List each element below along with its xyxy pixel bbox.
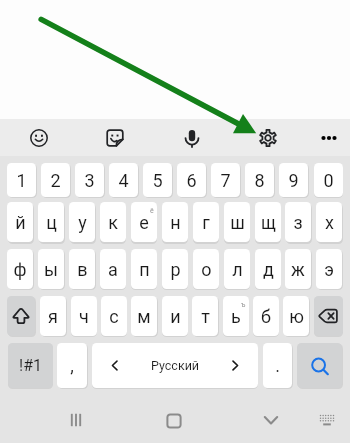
button[interactable]: Recent apps	[62, 406, 90, 434]
staticText: й	[15, 212, 26, 233]
button[interactable]: т	[192, 296, 218, 336]
staticText: н	[170, 212, 181, 233]
button[interactable]: е	[131, 202, 157, 242]
staticText: л	[232, 259, 243, 280]
button[interactable]: Settings	[250, 120, 286, 156]
staticText: я	[48, 306, 58, 327]
button[interactable]: д	[255, 249, 281, 289]
button[interactable]: х	[316, 202, 342, 242]
button[interactable]: й	[7, 202, 33, 242]
button[interactable]: я	[40, 296, 66, 336]
staticText: п	[139, 259, 150, 280]
button[interactable]: Shift	[7, 296, 35, 336]
staticText: з	[293, 212, 303, 233]
button[interactable]: 6	[177, 163, 206, 197]
staticText: ъ	[241, 301, 246, 309]
button[interactable]: 1	[7, 163, 36, 197]
staticText: ш	[230, 212, 245, 233]
button[interactable]: п	[131, 249, 157, 289]
staticText: ы	[44, 259, 58, 280]
staticText: у	[78, 212, 87, 233]
staticText: г	[202, 212, 210, 233]
button[interactable]: Voice input	[174, 120, 210, 156]
staticText: .	[275, 355, 280, 376]
staticText: 8	[254, 170, 265, 191]
staticText: 3	[84, 170, 95, 191]
button[interactable]: ы	[38, 249, 64, 289]
button[interactable]: ь	[223, 296, 249, 336]
staticText: х	[325, 212, 334, 233]
button[interactable]: ю	[283, 296, 309, 336]
staticText: 0	[323, 170, 334, 191]
staticText: 4	[118, 170, 129, 191]
button[interactable]: з	[285, 202, 311, 242]
staticText: 9	[288, 170, 299, 191]
button[interactable]: Stickers	[97, 120, 133, 156]
staticText: ц	[46, 212, 57, 233]
button[interactable]: в	[69, 249, 95, 289]
button[interactable]: ц	[38, 202, 64, 242]
staticText: Русский	[151, 358, 200, 373]
button[interactable]: к	[100, 202, 126, 242]
staticText: 1	[16, 170, 27, 191]
button[interactable]: б	[253, 296, 279, 336]
button[interactable]: 4	[109, 163, 138, 197]
button[interactable]: у	[69, 202, 95, 242]
button[interactable]: ж	[285, 249, 311, 289]
staticText: 6	[186, 170, 197, 191]
staticText: в	[77, 259, 88, 280]
staticText: ю	[289, 306, 304, 327]
button[interactable]: и	[162, 296, 188, 336]
button[interactable]: .	[263, 343, 292, 388]
button[interactable]: о	[193, 249, 219, 289]
button[interactable]: More options	[311, 120, 347, 156]
button[interactable]: э	[316, 249, 342, 289]
button[interactable]: !#1	[8, 343, 53, 388]
staticText: ь	[231, 306, 241, 327]
button[interactable]: Hide keyboard	[257, 406, 285, 434]
staticText: е	[139, 212, 149, 233]
button[interactable]: ч	[71, 296, 97, 336]
button[interactable]: г	[193, 202, 219, 242]
button[interactable]: Switch keyboard	[313, 406, 341, 434]
staticText: ч	[79, 306, 89, 327]
button[interactable]: с	[101, 296, 127, 336]
staticText: 2	[50, 170, 61, 191]
button[interactable]: л	[224, 249, 250, 289]
staticText: с	[109, 306, 119, 327]
button[interactable]: н	[162, 202, 188, 242]
staticText: !#1	[19, 356, 42, 375]
button[interactable]: 5	[143, 163, 172, 197]
button[interactable]: 9	[279, 163, 308, 197]
button[interactable]: 8	[245, 163, 274, 197]
staticText: м	[137, 306, 151, 327]
button[interactable]: Search	[297, 343, 342, 388]
button[interactable]: ф	[7, 249, 33, 289]
button[interactable]: ,	[57, 343, 87, 388]
staticText: ,	[70, 355, 74, 376]
staticText: щ	[261, 212, 276, 233]
button[interactable]: Backspace	[314, 296, 343, 336]
button[interactable]: а	[100, 249, 126, 289]
staticText: 7	[220, 170, 231, 191]
button[interactable]: Emoji	[21, 120, 57, 156]
staticText: к	[108, 212, 118, 233]
button[interactable]: 7	[211, 163, 240, 197]
button[interactable]: Русский	[92, 343, 258, 388]
staticText: б	[261, 306, 271, 327]
button[interactable]: м	[131, 296, 157, 336]
staticText: а	[108, 259, 118, 280]
button[interactable]: 2	[41, 163, 70, 197]
button[interactable]: р	[162, 249, 188, 289]
staticText: р	[170, 259, 181, 280]
staticText: 5	[152, 170, 163, 191]
staticText: ж	[291, 259, 305, 280]
button[interactable]: щ	[255, 202, 281, 242]
button[interactable]: 3	[75, 163, 104, 197]
staticText: д	[263, 259, 274, 280]
staticText: о	[201, 259, 212, 280]
button[interactable]: 0	[314, 163, 343, 197]
button[interactable]: ш	[224, 202, 250, 242]
staticText: ё	[150, 207, 154, 215]
button[interactable]: Home	[160, 407, 188, 435]
